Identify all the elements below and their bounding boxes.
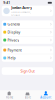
staticText: Payment [7,48,21,52]
staticText: General [7,22,20,26]
button[interactable]: Jordan Avery [2,6,53,16]
button[interactable]: Payment [2,46,53,54]
staticText: Store [24,96,30,99]
staticText: Home [6,96,13,99]
button[interactable]: Privacy [2,36,53,44]
staticText: Account [40,96,51,99]
staticText: 9:41 [3,1,10,5]
button[interactable]: Home [0,90,18,100]
staticText: Display [7,30,20,34]
button[interactable]: Help [2,54,53,62]
button[interactable]: Display [2,28,53,36]
button[interactable]: Sign Out [2,67,53,75]
button[interactable]: Account [37,90,55,100]
staticText: Jordan Avery [11,5,32,10]
staticText: Help [7,56,15,60]
staticText: Apple Account, iCloud [11,10,31,16]
staticText: Privacy [7,38,19,42]
button[interactable]: General [2,20,53,28]
button[interactable]: Store [18,90,37,100]
staticText: Sign Out [20,69,34,73]
